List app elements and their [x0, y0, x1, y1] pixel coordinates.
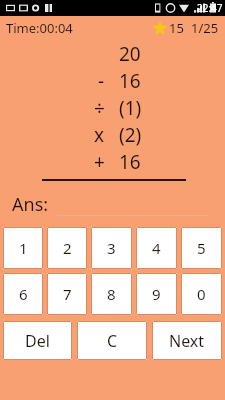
staticText: ÷ — [94, 95, 105, 121]
button[interactable]: 5 — [181, 227, 222, 269]
staticText: 3 — [107, 238, 116, 258]
staticText: (1) — [119, 95, 142, 121]
staticText: C — [107, 330, 118, 352]
staticText: Ans: — [12, 192, 49, 217]
staticText: 9 — [152, 284, 161, 304]
staticText: 1 — [19, 238, 28, 258]
staticText: 4 — [152, 238, 161, 258]
button[interactable]: 1 — [3, 227, 43, 269]
staticText: 1/25 — [191, 19, 219, 37]
staticText: 6 — [19, 284, 28, 304]
button[interactable]: 6 — [3, 273, 43, 315]
staticText: (2) — [119, 122, 142, 148]
staticText: 20 — [119, 41, 141, 67]
button[interactable]: 8 — [91, 273, 132, 315]
button[interactable]: 3 — [91, 227, 132, 269]
staticText: 16 — [119, 68, 141, 94]
staticText: 15 — [169, 19, 184, 37]
button[interactable]: Next — [152, 321, 222, 360]
staticText: 5 — [197, 238, 206, 258]
staticText: Time:00:04 — [6, 19, 73, 37]
staticText: 2 — [63, 238, 72, 258]
button[interactable]: 2 — [47, 227, 87, 269]
button[interactable]: 0 — [181, 273, 222, 315]
button[interactable]: 9 — [136, 273, 177, 315]
button[interactable]: Del — [3, 321, 72, 360]
staticText: Del — [25, 330, 50, 352]
button[interactable] — [57, 192, 209, 216]
staticText: 16 — [119, 149, 141, 175]
staticText: 7 — [63, 284, 72, 304]
staticText: x — [94, 122, 105, 148]
staticText: Next — [169, 330, 205, 352]
staticText: + — [94, 149, 105, 175]
staticText: 8 — [107, 284, 116, 304]
staticText: 0 — [197, 284, 206, 304]
button[interactable]: 4 — [136, 227, 177, 269]
staticText: - — [98, 68, 105, 94]
button[interactable]: C — [77, 321, 147, 360]
staticText: 22:47 — [197, 1, 223, 15]
button[interactable]: 7 — [47, 273, 87, 315]
